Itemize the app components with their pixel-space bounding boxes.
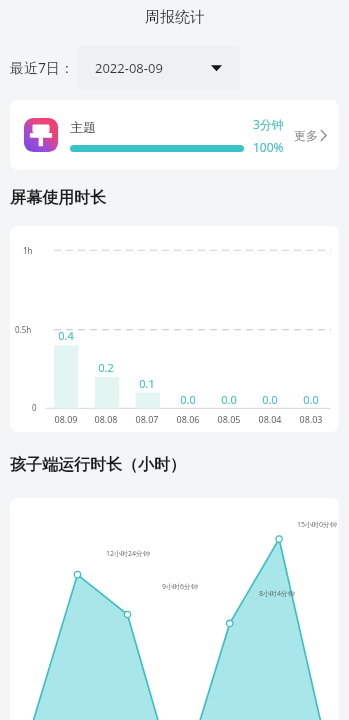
staticText: 9小时6分钟 (162, 582, 199, 592)
staticText: 08.06 (176, 413, 200, 425)
staticText: 0.0 (221, 392, 237, 407)
staticText: 孩子端运行时长（小时） (10, 455, 186, 475)
staticText: 屏幕使用时长 (10, 188, 106, 208)
staticText: 0.0 (303, 392, 319, 407)
staticText: 15小时0分钟 (297, 520, 338, 530)
button[interactable]: 主题应用图标 (10, 100, 339, 170)
staticText: 0.5h (15, 324, 32, 335)
button[interactable]: 2022-08-09 (78, 45, 240, 90)
staticText: 0.4 (58, 328, 74, 343)
staticText: 2022-08-09 (95, 59, 163, 77)
staticText: 08.09 (54, 413, 78, 425)
staticText: 0.0 (262, 392, 278, 407)
staticText: 更多 (294, 128, 318, 143)
staticText: 08.07 (135, 413, 159, 425)
other: 主题应用图标 (24, 118, 58, 152)
staticText: 周报统计 (145, 8, 205, 27)
staticText: 08.03 (299, 413, 323, 425)
staticText: 3分钟 (253, 116, 284, 132)
staticText: 1h (23, 245, 33, 256)
staticText: 0.1 (139, 376, 155, 391)
staticText: 0.2 (98, 360, 114, 375)
button[interactable]: 更多 (294, 120, 327, 151)
staticText: 08.05 (217, 413, 241, 425)
staticText: 08.04 (258, 413, 282, 425)
staticText: 最近7日： (10, 58, 75, 77)
staticText: 12小时24分钟 (106, 549, 151, 559)
staticText: 08.08 (94, 413, 118, 425)
staticText: 8小时4分钟 (259, 589, 296, 599)
staticText: 0.0 (180, 392, 196, 407)
staticText: 主题 (70, 119, 96, 135)
staticText: 0 (32, 402, 37, 413)
staticText: 100% (253, 139, 284, 155)
